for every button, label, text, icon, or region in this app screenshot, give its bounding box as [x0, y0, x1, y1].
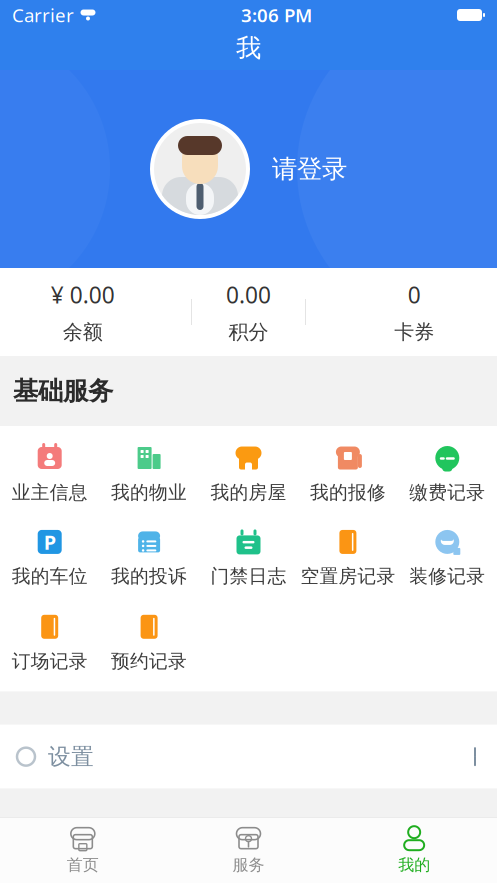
button[interactable]: 缴费记录 — [398, 432, 497, 516]
staticText: P — [44, 529, 56, 555]
staticText: 装修记录 — [409, 565, 485, 588]
staticText: 我的 — [398, 855, 430, 875]
staticText: 余额 — [63, 320, 103, 344]
button[interactable]: 设置 — [0, 725, 497, 789]
button[interactable]: 我的房屋 — [199, 432, 298, 516]
button[interactable]: 服务 — [166, 818, 331, 882]
staticText: 缴费记录 — [409, 481, 485, 504]
staticText: 业主信息 — [12, 481, 88, 504]
button[interactable]: 订场记录 — [0, 601, 99, 685]
button[interactable]: 预约记录 — [99, 601, 199, 685]
staticText: ¥ 0.00 — [51, 280, 115, 310]
button[interactable]: 首页 — [0, 818, 166, 882]
button[interactable]: 我的投诉 — [99, 516, 199, 600]
staticText: 首页 — [67, 855, 99, 875]
button[interactable]: 门禁日志 — [199, 516, 298, 600]
staticText: 我 — [236, 32, 261, 63]
staticText: 卡券 — [394, 320, 434, 344]
staticText: 0 — [408, 280, 421, 310]
button[interactable]: 装修记录 — [398, 516, 497, 600]
staticText: 3:06 PM — [241, 3, 312, 27]
staticText: 服务 — [232, 855, 264, 875]
button[interactable]: ¥ 0.00 — [0, 261, 166, 363]
staticText: 空置房记录 — [300, 565, 395, 588]
button[interactable]: 0 — [331, 261, 497, 363]
staticText: 设置 — [48, 743, 94, 770]
button[interactable]: 我的报修 — [298, 432, 398, 516]
button[interactable]: 空置房记录 — [298, 516, 398, 600]
staticText: 预约记录 — [111, 650, 187, 673]
button[interactable]: P — [0, 516, 99, 600]
button[interactable]: 请登录 — [132, 111, 365, 227]
staticText: 我的房屋 — [210, 481, 286, 504]
staticText: 订场记录 — [12, 650, 88, 673]
staticText: 我的报修 — [310, 481, 386, 504]
staticText: 门禁日志 — [210, 565, 286, 588]
staticText: 0.00 — [226, 280, 271, 310]
button[interactable]: 业主信息 — [0, 432, 99, 516]
button[interactable]: 我的 — [331, 818, 497, 882]
staticText: 请登录 — [272, 153, 347, 184]
button[interactable]: 0.00 — [166, 261, 331, 363]
staticText: 基础服务 — [13, 375, 113, 406]
staticText: 我的投诉 — [111, 565, 187, 588]
staticText: 我的物业 — [111, 481, 187, 504]
staticText: 我的车位 — [12, 565, 88, 588]
button[interactable]: 我的物业 — [99, 432, 199, 516]
staticText: Carrier — [12, 3, 74, 27]
staticText: 积分 — [228, 320, 268, 344]
